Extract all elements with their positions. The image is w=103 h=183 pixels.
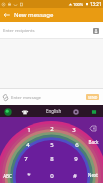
staticText: 0 — [50, 172, 54, 180]
button[interactable]: Backspace — [88, 124, 98, 132]
staticText: # — [73, 172, 77, 180]
staticText: 1 — [27, 126, 31, 134]
staticText: 8 — [50, 155, 54, 163]
staticText: 100% — [73, 2, 84, 7]
button[interactable]: 8 — [47, 154, 56, 163]
button[interactable]: 1 — [24, 125, 33, 134]
staticText: 9 — [74, 155, 78, 163]
button[interactable]: English — [44, 107, 64, 115]
button[interactable]: Emoji — [2, 106, 13, 117]
button[interactable]: 5 — [47, 140, 56, 149]
staticText: 3 — [72, 126, 76, 134]
button[interactable]: 3 — [69, 125, 78, 134]
staticText: SEND — [88, 95, 98, 100]
staticText: Back — [88, 139, 99, 145]
staticText: 7 — [24, 155, 28, 163]
button[interactable]: 9 — [71, 154, 80, 163]
button[interactable]: 0 — [47, 171, 56, 180]
staticText: New message — [14, 11, 54, 19]
button[interactable]: SEND — [86, 94, 99, 100]
staticText: 13:21 — [90, 1, 102, 7]
button[interactable]: Settings — [70, 106, 81, 117]
button[interactable]: Hide keyboard — [88, 106, 99, 117]
button[interactable]: # — [70, 171, 79, 180]
staticText: 5 — [50, 141, 54, 149]
button[interactable]: 4 — [23, 140, 32, 149]
button[interactable]: * — [24, 170, 33, 179]
staticText: English — [46, 108, 62, 114]
staticText: 4 — [26, 141, 30, 149]
staticText: ABC — [3, 173, 12, 179]
button[interactable]: 6 — [72, 140, 81, 149]
staticText: 6 — [75, 141, 79, 149]
button[interactable]: Back — [86, 137, 100, 146]
button[interactable]: 7 — [21, 154, 30, 163]
button[interactable]: Theme — [19, 106, 30, 117]
button[interactable]: 2 — [47, 124, 56, 133]
button[interactable]: Add recipient — [90, 25, 101, 36]
staticText: Enter message — [11, 94, 86, 100]
staticText: 2 — [50, 125, 54, 133]
button[interactable]: Back — [0, 8, 14, 22]
staticText: Enter recipients — [3, 27, 90, 33]
button[interactable]: Next — [86, 170, 100, 179]
button[interactable]: Attach — [0, 92, 11, 103]
staticText: Next — [88, 172, 98, 178]
staticText: * — [27, 171, 31, 179]
button[interactable]: ABC — [0, 171, 14, 180]
